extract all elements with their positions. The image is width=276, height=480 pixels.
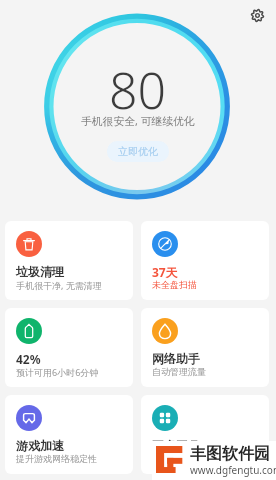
- button[interactable]: 更多工具: [141, 395, 269, 474]
- staticText: 游戏加速: [16, 438, 64, 453]
- staticText: 网络助手: [152, 351, 200, 366]
- button[interactable]: 游戏加速: [5, 395, 133, 474]
- staticText: 手机很干净, 无需清理: [16, 279, 102, 291]
- button[interactable]: 网络助手: [141, 308, 269, 387]
- staticText: 丰图软件园: [190, 444, 270, 464]
- button[interactable]: 垃圾清理: [5, 221, 133, 300]
- staticText: 提升游戏网络稳定性: [16, 453, 97, 464]
- staticText: 立即优化: [118, 145, 158, 158]
- staticText: www.dgfengtu.com: [190, 463, 276, 477]
- staticText: 手机很安全, 可继续优化: [81, 113, 195, 128]
- staticText: 未全盘扫描: [152, 279, 197, 290]
- staticText: 37天: [152, 264, 178, 280]
- staticText: 常用工具集合: [152, 453, 206, 464]
- staticText: 自动管理流量: [152, 366, 206, 377]
- staticText: 80: [109, 56, 167, 124]
- staticText: 更多工具: [152, 438, 200, 453]
- staticText: 垃圾清理: [16, 264, 64, 279]
- button[interactable]: 37天: [141, 221, 269, 300]
- staticText: 预计可用6小时6分钟: [16, 366, 99, 378]
- button[interactable]: 42%: [5, 308, 133, 387]
- button[interactable]: 立即优化: [107, 141, 169, 162]
- button[interactable]: Settings: [248, 6, 266, 24]
- staticText: 42%: [16, 351, 41, 367]
